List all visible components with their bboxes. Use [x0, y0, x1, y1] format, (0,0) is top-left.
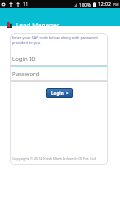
staticText: Enter your SAP code below along with pas… — [12, 35, 104, 45]
button[interactable]: Password — [10, 68, 108, 82]
staticText: 11 — [23, 1, 29, 7]
staticText: Password — [12, 70, 40, 78]
button[interactable]: Login — [46, 88, 73, 98]
staticText: Copyright © 2014 Krish Mark Infotech (I)… — [12, 156, 96, 161]
button[interactable]: Login ID — [10, 53, 108, 67]
staticText: PM — [113, 2, 119, 7]
staticText: Login ID — [12, 55, 36, 63]
staticText: Login — [51, 90, 64, 96]
staticText: 100% — [79, 2, 91, 8]
staticText: 12:02 — [98, 1, 111, 8]
staticText: Lead Manager — [16, 21, 60, 30]
